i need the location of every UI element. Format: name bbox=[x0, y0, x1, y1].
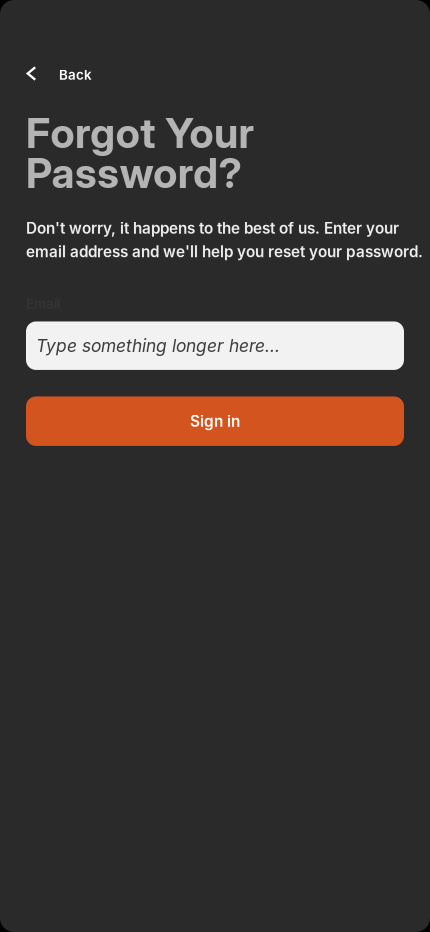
staticText: Sign in bbox=[190, 412, 240, 430]
button[interactable]: Back bbox=[26, 61, 92, 89]
staticText: Type something longer here… bbox=[36, 335, 280, 356]
staticText: Email bbox=[26, 296, 60, 312]
button[interactable]: Type something longer here… bbox=[26, 321, 404, 370]
staticText: Forgot Your Password? bbox=[26, 108, 254, 198]
staticText: Don't worry, it happens to the best of u… bbox=[26, 219, 423, 261]
button[interactable]: Sign in bbox=[26, 396, 404, 446]
staticText: Back bbox=[59, 67, 92, 83]
